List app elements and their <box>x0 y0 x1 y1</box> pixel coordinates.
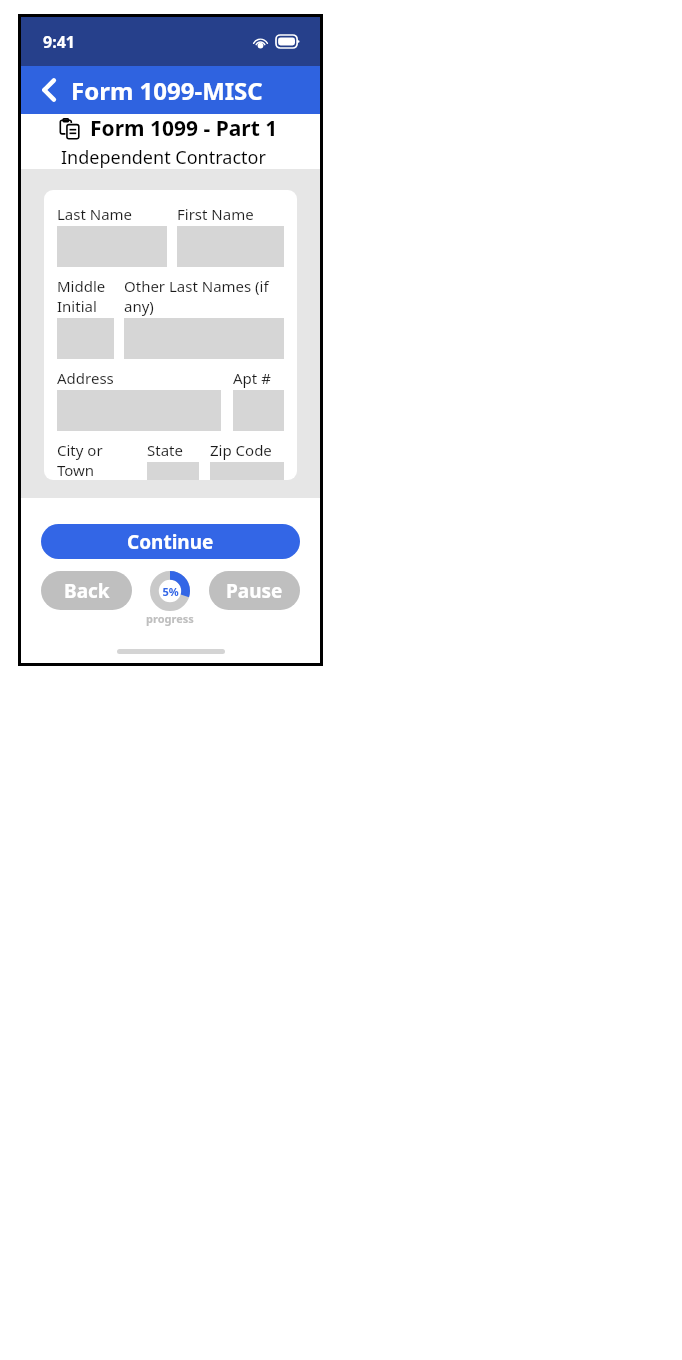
staticText: State <box>147 440 183 460</box>
staticText: Last Name <box>57 204 133 224</box>
staticText: Other Last Names (if any) <box>124 276 284 316</box>
staticText: Form 1099 - Part 1 <box>90 114 278 143</box>
staticText: Middle Initial <box>57 276 114 316</box>
staticText: Back <box>64 578 110 604</box>
button[interactable]: Pause <box>209 571 300 610</box>
button[interactable]: 5% <box>150 571 190 611</box>
staticText: Address <box>57 368 114 388</box>
staticText: First Name <box>177 204 254 224</box>
staticText: progress <box>146 611 194 626</box>
staticText: 9:41 <box>43 31 75 53</box>
staticText: 5% <box>162 584 179 599</box>
staticText: Apt # <box>233 368 271 388</box>
staticText: Zip Code <box>210 440 272 460</box>
staticText: Continue <box>127 529 214 555</box>
button[interactable]: Back <box>41 571 132 610</box>
staticText: City or Town <box>57 440 139 480</box>
staticText: Pause <box>226 578 283 604</box>
staticText: Form 1099-MISC <box>71 74 263 107</box>
button[interactable]: Continue <box>41 524 300 559</box>
staticText: Independent Contractor <box>61 145 266 169</box>
button[interactable]: Back <box>31 73 65 107</box>
